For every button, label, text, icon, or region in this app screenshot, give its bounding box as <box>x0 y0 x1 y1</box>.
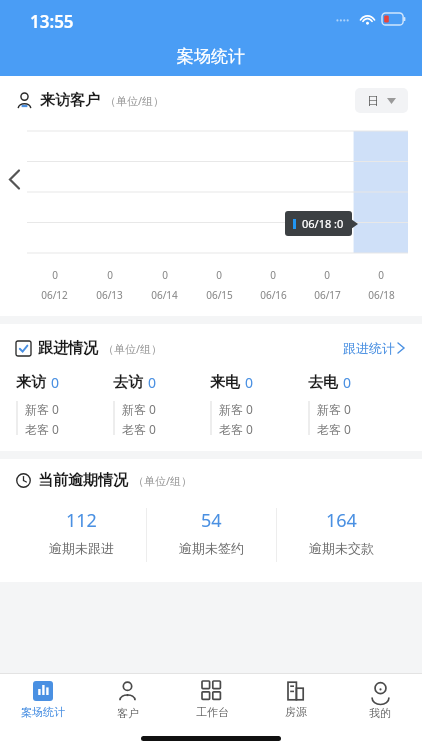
staticText: 来访 <box>16 373 46 392</box>
button[interactable]: 房源 <box>254 674 338 726</box>
button[interactable]: 我的 <box>338 674 422 726</box>
button[interactable]: 日 <box>355 88 408 113</box>
staticText: （单位/组） <box>105 93 165 108</box>
staticText: 老客 0 <box>25 421 59 437</box>
staticText: 老客 0 <box>317 421 351 437</box>
staticText: 0 <box>216 268 222 282</box>
staticText: 新客 0 <box>122 401 156 417</box>
staticText: 逾期未交款 <box>309 540 374 556</box>
staticText: 54 <box>201 508 222 533</box>
staticText: 逾期未签约 <box>179 540 244 556</box>
staticText: 房源 <box>285 705 307 719</box>
staticText: 新客 0 <box>219 401 253 417</box>
staticText: 去电 <box>308 373 338 392</box>
button[interactable]: 工作台 <box>170 674 254 726</box>
staticText: 来电 <box>210 373 240 392</box>
staticText: 06/15 <box>206 288 233 302</box>
staticText: 去访 <box>113 373 143 392</box>
button[interactable]: 跟进统计 <box>339 336 408 360</box>
button[interactable]: 54 <box>147 508 276 562</box>
staticText: 06/18 :0 <box>302 216 344 231</box>
staticText: 工作台 <box>196 705 229 719</box>
staticText: 0 <box>270 268 276 282</box>
button[interactable]: 案场统计 <box>0 674 85 726</box>
staticText: 0 <box>378 268 384 282</box>
button[interactable]: 112 <box>16 508 146 562</box>
staticText: 跟进统计 <box>343 340 395 356</box>
button[interactable]: 164 <box>277 508 406 562</box>
staticText: 老客 0 <box>219 421 253 437</box>
staticText: （单位/组） <box>133 473 193 488</box>
staticText: 客户 <box>117 706 139 720</box>
staticText: 0 <box>107 268 113 282</box>
staticText: 我的 <box>369 706 391 720</box>
staticText: 新客 0 <box>317 401 351 417</box>
staticText: 新客 0 <box>25 401 59 417</box>
staticText: 老客 0 <box>122 421 156 437</box>
staticText: 0 <box>52 268 58 282</box>
staticText: （单位/组） <box>103 341 163 356</box>
staticText: 日 <box>367 93 379 108</box>
staticText: 当前逾期情况 <box>38 471 128 490</box>
staticText: 06/17 <box>314 288 341 302</box>
staticText: 0 <box>324 268 330 282</box>
staticText: 0 <box>148 373 157 392</box>
staticText: 0 <box>245 373 254 392</box>
staticText: 06/16 <box>260 288 287 302</box>
staticText: 164 <box>326 508 357 533</box>
staticText: 112 <box>66 508 97 533</box>
staticText: 案场统计 <box>177 46 245 67</box>
staticText: 06/14 <box>151 288 178 302</box>
staticText: 06/18 <box>368 288 395 302</box>
staticText: 来访客户 <box>40 91 100 110</box>
staticText: 06/12 <box>41 288 68 302</box>
staticText: 0 <box>162 268 168 282</box>
staticText: 跟进情况 <box>38 339 98 358</box>
staticText: 0 <box>343 373 352 392</box>
staticText: 逾期未跟进 <box>49 540 114 556</box>
staticText: 13:55 <box>30 10 74 33</box>
staticText: 06/13 <box>96 288 123 302</box>
button[interactable]: 客户 <box>85 674 170 726</box>
staticText: 案场统计 <box>21 705 65 719</box>
staticText: 0 <box>51 373 60 392</box>
